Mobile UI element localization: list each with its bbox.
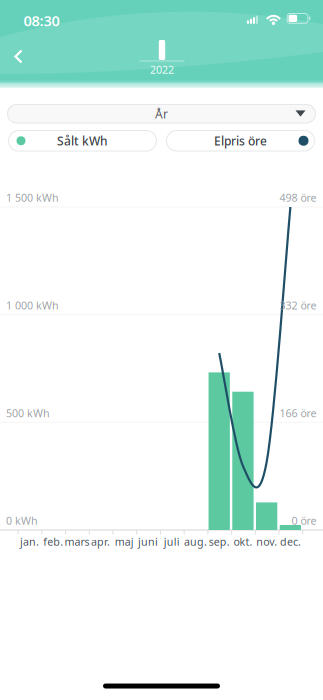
staticText: sep.: [209, 534, 230, 549]
staticText: 08:30: [23, 11, 59, 30]
staticText: Elpris öre: [214, 133, 267, 149]
staticText: mars: [64, 534, 89, 549]
staticText: feb.: [43, 534, 63, 549]
button[interactable]: Elpris öre: [166, 130, 315, 151]
staticText: maj: [115, 534, 134, 549]
staticText: dec.: [280, 534, 301, 549]
button[interactable]: År: [7, 104, 316, 123]
staticText: okt.: [233, 534, 252, 549]
button[interactable]: Sålt kWh: [8, 130, 157, 151]
staticText: 1 500 kWh: [6, 191, 59, 205]
staticText: 1 000 kWh: [6, 298, 59, 312]
button[interactable]: 2022: [139, 40, 184, 76]
staticText: apr.: [91, 534, 110, 549]
staticText: Sålt kWh: [57, 133, 108, 149]
staticText: nov.: [256, 534, 277, 549]
staticText: 500 kWh: [6, 406, 50, 420]
staticText: 498 öre: [279, 191, 316, 205]
staticText: jan.: [20, 534, 39, 549]
staticText: 332 öre: [279, 298, 316, 312]
staticText: juni: [138, 534, 158, 549]
staticText: 0 kWh: [6, 514, 38, 528]
button[interactable]: Back: [9, 45, 31, 67]
staticText: aug.: [184, 534, 207, 549]
staticText: 0 öre: [291, 514, 316, 528]
staticText: juli: [164, 534, 180, 549]
staticText: 2022: [150, 62, 174, 77]
staticText: År: [155, 106, 168, 122]
staticText: 166 öre: [279, 406, 316, 420]
